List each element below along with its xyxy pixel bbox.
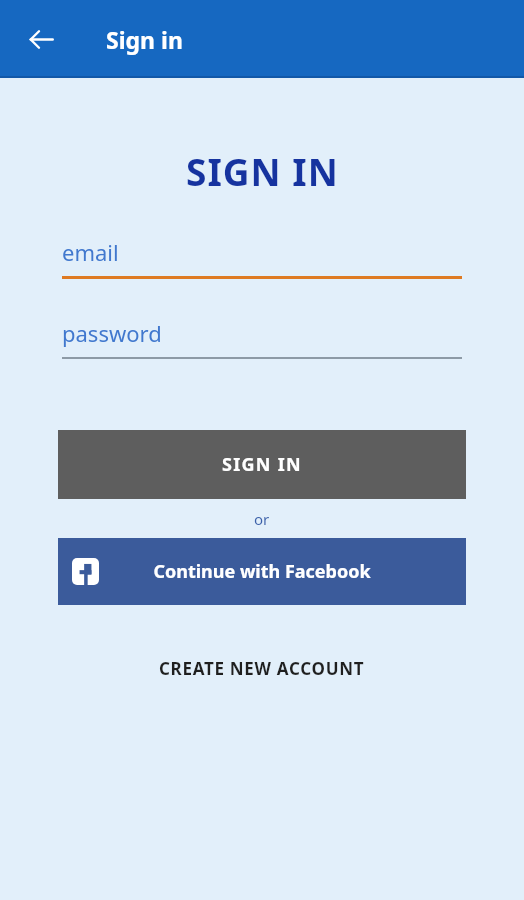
staticText: CREATE NEW ACCOUNT: [159, 657, 365, 680]
staticText: Continue with Facebook: [153, 559, 371, 584]
button[interactable]: Back: [19, 17, 63, 61]
staticText: or: [254, 509, 270, 529]
button[interactable]: email: [62, 237, 462, 279]
staticText: SIGN IN: [222, 452, 303, 477]
button[interactable]: Continue with Facebook: [58, 538, 466, 605]
button[interactable]: CREATE NEW ACCOUNT: [135, 649, 389, 688]
staticText: Sign in: [106, 24, 183, 55]
staticText: SIGN IN: [186, 146, 339, 196]
staticText: email: [62, 237, 119, 267]
button[interactable]: password: [62, 318, 462, 359]
button[interactable]: SIGN IN: [58, 430, 466, 499]
staticText: password: [62, 318, 162, 348]
